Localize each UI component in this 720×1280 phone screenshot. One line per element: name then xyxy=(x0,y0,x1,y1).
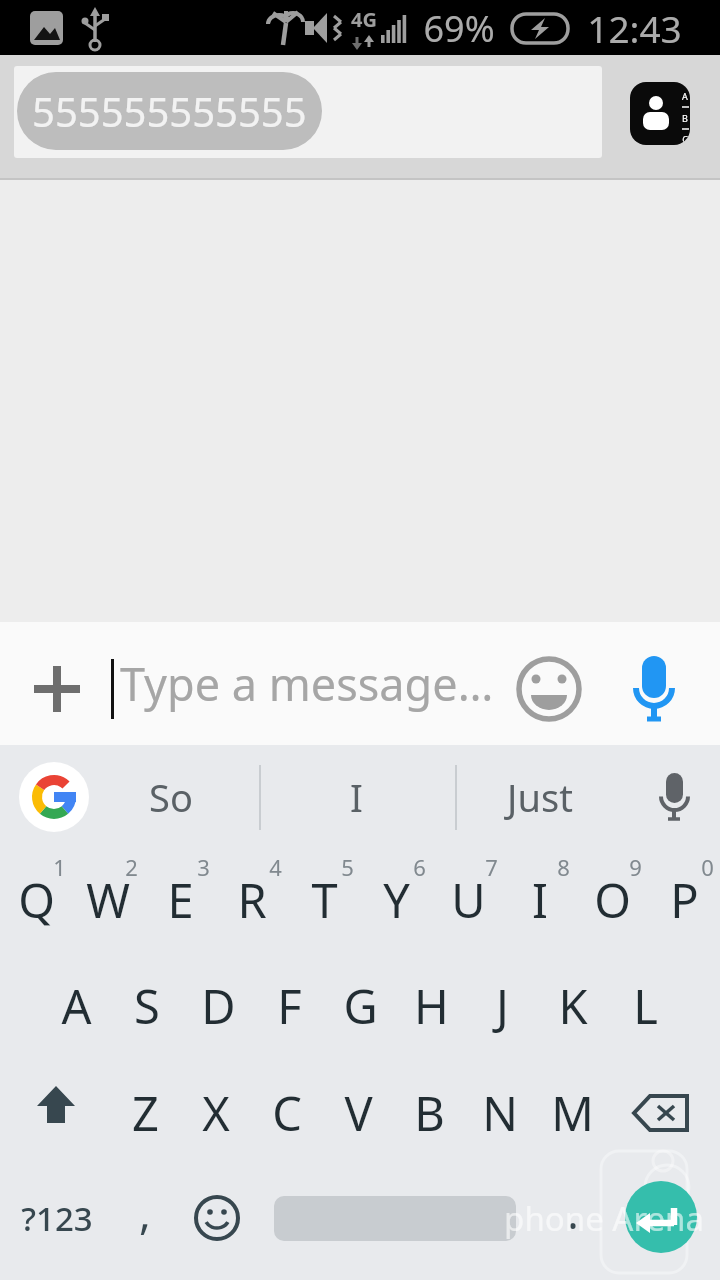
staticText: phone Arena xyxy=(504,1196,704,1241)
staticText: 9 xyxy=(629,852,642,882)
button[interactable]: F xyxy=(253,961,325,1051)
staticText: 2 xyxy=(125,852,138,882)
button[interactable]: S xyxy=(111,961,183,1051)
staticText: Z xyxy=(132,1081,159,1145)
button[interactable]: J xyxy=(466,961,538,1051)
staticText: ?123 xyxy=(21,1196,93,1241)
button[interactable]: N xyxy=(464,1068,536,1158)
button[interactable] xyxy=(20,1078,92,1148)
button[interactable]: G xyxy=(324,961,396,1051)
staticText: 4G xyxy=(351,6,377,33)
button[interactable]: 555555555555 xyxy=(17,72,322,150)
staticText: 8 xyxy=(557,852,570,882)
button[interactable]: U xyxy=(432,855,504,945)
staticText: G xyxy=(343,974,378,1038)
staticText: D xyxy=(201,974,236,1038)
staticText: K xyxy=(558,974,588,1038)
staticText: , xyxy=(139,1182,151,1242)
button[interactable]: Q xyxy=(0,855,72,945)
staticText: R xyxy=(237,868,267,932)
staticText: 12:43 xyxy=(587,3,682,53)
staticText: 7 xyxy=(485,852,498,882)
button[interactable]: So xyxy=(101,762,241,832)
staticText: Type a message… xyxy=(120,653,494,714)
button[interactable]: W xyxy=(72,855,144,945)
staticText: B xyxy=(414,1081,445,1145)
staticText: I xyxy=(532,868,548,932)
button[interactable]: Just xyxy=(465,762,615,832)
staticText: 0 xyxy=(701,852,714,882)
button[interactable]: A xyxy=(40,961,112,1051)
button[interactable]: , xyxy=(115,1172,175,1252)
staticText: M xyxy=(551,1081,594,1145)
staticText: E xyxy=(167,868,194,932)
button[interactable]: L xyxy=(609,961,681,1051)
staticText: 555555555555 xyxy=(32,84,307,138)
staticText: U xyxy=(451,868,486,932)
button[interactable]: Z xyxy=(109,1068,181,1158)
button[interactable]: O xyxy=(576,855,648,945)
button[interactable] xyxy=(625,1078,697,1148)
button[interactable] xyxy=(515,656,583,724)
button[interactable]: Type a message… xyxy=(120,622,520,745)
button[interactable]: D xyxy=(182,961,254,1051)
staticText: B xyxy=(682,112,688,124)
staticText: 6 xyxy=(413,852,426,882)
staticText: W xyxy=(86,868,130,932)
staticText: 69% xyxy=(423,4,495,53)
button[interactable]: V xyxy=(322,1068,394,1158)
button[interactable]: Y xyxy=(360,855,432,945)
staticText: S xyxy=(134,974,160,1038)
staticText: I xyxy=(350,771,363,823)
staticText: 1 xyxy=(53,852,66,882)
button[interactable] xyxy=(25,657,89,713)
staticText: C xyxy=(272,1081,302,1145)
button[interactable]: H xyxy=(395,961,467,1051)
button[interactable]: ?123 xyxy=(2,1178,112,1258)
staticText: Just xyxy=(507,771,573,823)
staticText: P xyxy=(670,868,699,932)
button[interactable] xyxy=(181,1182,253,1254)
staticText: N xyxy=(482,1081,518,1145)
button[interactable]: P xyxy=(648,855,720,945)
button[interactable]: I xyxy=(286,762,426,832)
button[interactable]: T xyxy=(288,855,360,945)
staticText: 3 xyxy=(197,852,210,882)
button[interactable] xyxy=(620,652,690,722)
button[interactable]: E xyxy=(144,855,216,945)
staticText: J xyxy=(496,974,509,1038)
button[interactable]: B xyxy=(393,1068,465,1158)
staticText: So xyxy=(149,771,193,823)
button[interactable]: R xyxy=(216,855,288,945)
button[interactable]: K xyxy=(537,961,609,1051)
staticText: H xyxy=(414,974,449,1038)
staticText: A xyxy=(61,974,92,1038)
staticText: Y xyxy=(383,868,410,932)
staticText: X xyxy=(202,1081,230,1145)
staticText: L xyxy=(633,974,658,1038)
staticText: . xyxy=(567,1182,579,1242)
staticText: F xyxy=(277,974,302,1038)
staticText: Q xyxy=(18,868,55,932)
staticText: V xyxy=(344,1081,373,1145)
staticText: O xyxy=(594,868,631,932)
button[interactable] xyxy=(274,1196,516,1241)
staticText: T xyxy=(311,868,338,932)
staticText: C xyxy=(682,133,688,145)
button[interactable]: X xyxy=(180,1068,252,1158)
button[interactable]: I xyxy=(504,855,576,945)
staticText: 5 xyxy=(341,852,354,882)
staticText: A xyxy=(682,90,688,102)
button[interactable]: . xyxy=(543,1172,603,1252)
button[interactable]: A xyxy=(630,82,690,145)
button[interactable]: M xyxy=(536,1068,608,1158)
staticText: 4 xyxy=(269,852,282,882)
button[interactable]: C xyxy=(251,1068,323,1158)
button[interactable] xyxy=(625,1181,697,1253)
